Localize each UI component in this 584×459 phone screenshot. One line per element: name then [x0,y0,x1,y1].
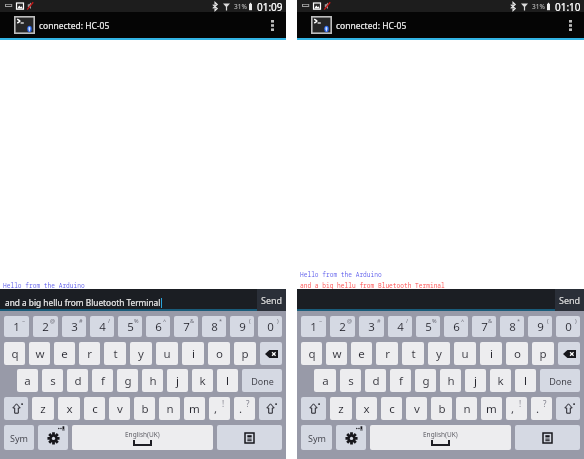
button[interactable]: b [134,397,155,420]
button[interactable]: More options [261,12,283,38]
button[interactable]: h [142,369,163,392]
button[interactable]: a [314,369,336,392]
button[interactable]: c [84,397,105,420]
button[interactable]: Settings [336,425,366,450]
button[interactable]: m [184,397,205,420]
button[interactable]: , [209,397,230,420]
button[interactable]: l [217,369,238,392]
button[interactable]: k [490,369,511,392]
button[interactable]: o [506,342,528,365]
button[interactable]: s [42,369,63,392]
button[interactable]: , [506,397,527,420]
button[interactable]: . [234,397,255,420]
button[interactable]: 4 [90,316,114,337]
button[interactable]: r [376,342,398,365]
button[interactable]: and a big hellu from Bluetooth Terminal [0,289,257,311]
button[interactable]: Settings [38,425,68,450]
button[interactable]: j [167,369,188,392]
button[interactable]: d [365,369,386,392]
button[interactable]: 1 [301,316,326,337]
button[interactable]: 5 [416,316,440,337]
button[interactable]: Send [555,289,584,311]
button[interactable]: Change keyboard [217,425,282,450]
button[interactable]: Backspace [260,342,282,365]
button[interactable]: 5 [118,316,142,337]
button[interactable]: 7 [174,316,198,337]
button[interactable]: h [440,369,461,392]
button[interactable]: w [326,342,347,365]
button[interactable]: j [465,369,486,392]
button[interactable]: 3 [359,316,384,337]
button[interactable]: . [531,397,552,420]
button[interactable]: p [532,342,554,365]
button[interactable]: Change keyboard [515,425,580,450]
button[interactable]: q [301,342,322,365]
button[interactable]: Shift [556,397,580,420]
button[interactable]: 8 [202,316,226,337]
staticText: n [166,401,174,417]
button[interactable]: e [54,342,75,365]
button[interactable]: v [406,397,427,420]
button[interactable]: 0 [258,316,282,337]
button[interactable]: English(UK) [72,425,213,450]
button[interactable]: Shift [259,397,282,420]
button[interactable]: 3 [62,316,86,337]
button[interactable]: 1 [4,316,29,337]
button[interactable]: x [356,397,377,420]
button[interactable]: v [109,397,130,420]
button[interactable]: Send [257,289,286,311]
button[interactable]: i [182,342,204,365]
button[interactable]: u [156,342,178,365]
button[interactable]: 2 [330,316,355,337]
button[interactable]: q [4,342,25,365]
button[interactable]: 9 [230,316,254,337]
button[interactable]: g [117,369,138,392]
button[interactable]: Shift [4,397,28,420]
button[interactable]: b [431,397,452,420]
staticText: w [35,346,45,362]
button[interactable]: l [515,369,536,392]
button[interactable]: 7 [472,316,496,337]
button[interactable]: c [381,397,402,420]
button[interactable]: More options [559,12,581,38]
button[interactable]: s [340,369,361,392]
button[interactable]: a [17,369,38,392]
button[interactable]: Done [540,369,580,392]
button[interactable]: p [234,342,256,365]
button[interactable]: w [29,342,50,365]
button[interactable]: y [130,342,152,365]
button[interactable]: 2 [33,316,58,337]
button[interactable]: 8 [500,316,524,337]
button[interactable]: z [32,397,54,420]
button[interactable]: t [402,342,424,365]
button[interactable]: m [481,397,502,420]
button[interactable]: e [351,342,372,365]
button[interactable]: 9 [528,316,552,337]
button[interactable]: u [454,342,476,365]
button[interactable]: Sym [4,425,34,450]
button[interactable]: o [208,342,230,365]
button[interactable]: Done [242,369,282,392]
button[interactable] [297,289,555,311]
button[interactable]: r [79,342,100,365]
button[interactable]: i [480,342,502,365]
button[interactable]: t [104,342,126,365]
button[interactable]: Shift [301,397,326,420]
button[interactable]: Backspace [558,342,580,365]
button[interactable]: g [415,369,436,392]
button[interactable]: n [456,397,477,420]
button[interactable]: 4 [388,316,412,337]
button[interactable]: f [92,369,113,392]
button[interactable]: z [330,397,352,420]
button[interactable]: f [390,369,411,392]
button[interactable]: n [159,397,180,420]
button[interactable]: 6 [146,316,170,337]
button[interactable]: d [67,369,88,392]
button[interactable]: y [428,342,450,365]
button[interactable]: 6 [444,316,468,337]
button[interactable]: k [192,369,213,392]
button[interactable]: x [58,397,80,420]
button[interactable]: 0 [556,316,580,337]
button[interactable]: Sym [301,425,332,450]
button[interactable]: English(UK) [370,425,511,450]
